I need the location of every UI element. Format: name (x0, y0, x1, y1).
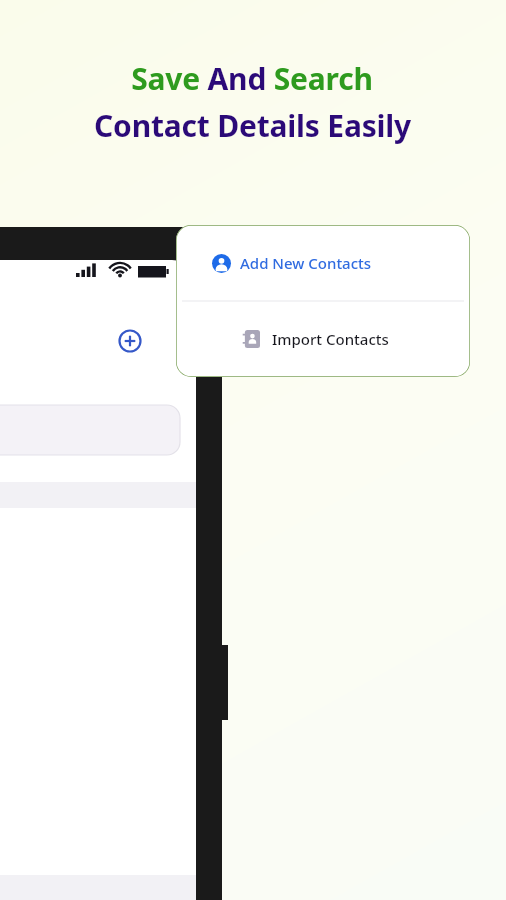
staticText: Add New Contacts (240, 253, 372, 273)
other: Import contacts (242, 330, 260, 348)
other: Add new contact (212, 254, 231, 273)
button[interactable]: Import contacts (176, 301, 470, 377)
staticText: Import Contacts (272, 329, 389, 349)
staticText: Contact Details Easily (94, 105, 411, 146)
button[interactable]: Add new contact (176, 225, 470, 301)
staticText: Save And Search (131, 58, 373, 99)
